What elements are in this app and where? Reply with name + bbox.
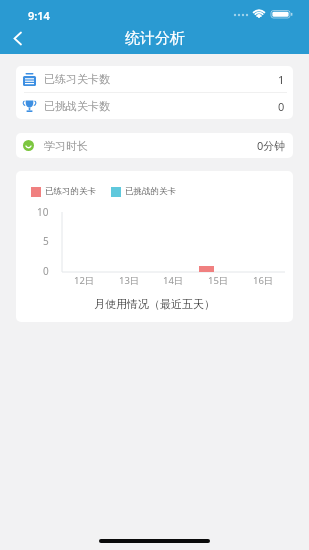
staticText: 学习时长: [44, 139, 88, 153]
staticText: 0分钟: [257, 138, 286, 153]
staticText: 已挑战关卡数: [44, 99, 110, 113]
staticText: 统计分析: [125, 29, 185, 48]
staticText: 14日: [163, 274, 184, 287]
staticText: 0: [43, 264, 49, 278]
button[interactable]: 已挑战关卡数: [16, 93, 293, 119]
staticText: 已练习的关卡: [45, 186, 96, 197]
staticText: 12日: [74, 274, 95, 287]
staticText: 已挑战的关卡: [125, 186, 176, 197]
staticText: 1: [278, 72, 285, 87]
staticText: 16日: [253, 274, 274, 287]
staticText: 月使用情况（最近五天）: [94, 297, 215, 311]
staticText: 0: [278, 99, 285, 114]
staticText: 15日: [208, 274, 229, 287]
button[interactable]: 已练习关卡数: [16, 66, 293, 92]
staticText: 9:14: [28, 8, 50, 23]
staticText: 13日: [119, 274, 140, 287]
button[interactable]: 学习时长: [16, 133, 293, 158]
button[interactable]: [0, 23, 34, 54]
staticText: 5: [43, 234, 49, 248]
staticText: 10: [37, 205, 49, 219]
staticText: 已练习关卡数: [44, 72, 110, 86]
